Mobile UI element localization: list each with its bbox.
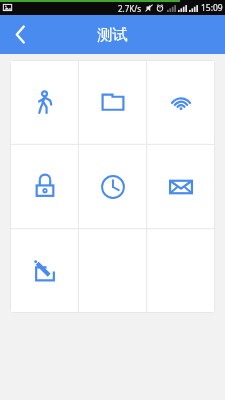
staticText: 测试 xyxy=(97,25,128,45)
staticText: 2.7K/s xyxy=(118,3,142,14)
button[interactable]: Wi-Fi xyxy=(147,60,215,145)
button[interactable]: Clock xyxy=(79,145,147,229)
button[interactable]: Lock xyxy=(10,145,79,229)
button[interactable]: Compose xyxy=(10,229,79,313)
button[interactable]: Mail xyxy=(147,145,215,229)
button[interactable]: Walk xyxy=(10,60,79,145)
button[interactable]: Back xyxy=(0,15,40,54)
staticText: 15:09 xyxy=(201,2,223,14)
button[interactable]: Folder xyxy=(79,60,147,145)
